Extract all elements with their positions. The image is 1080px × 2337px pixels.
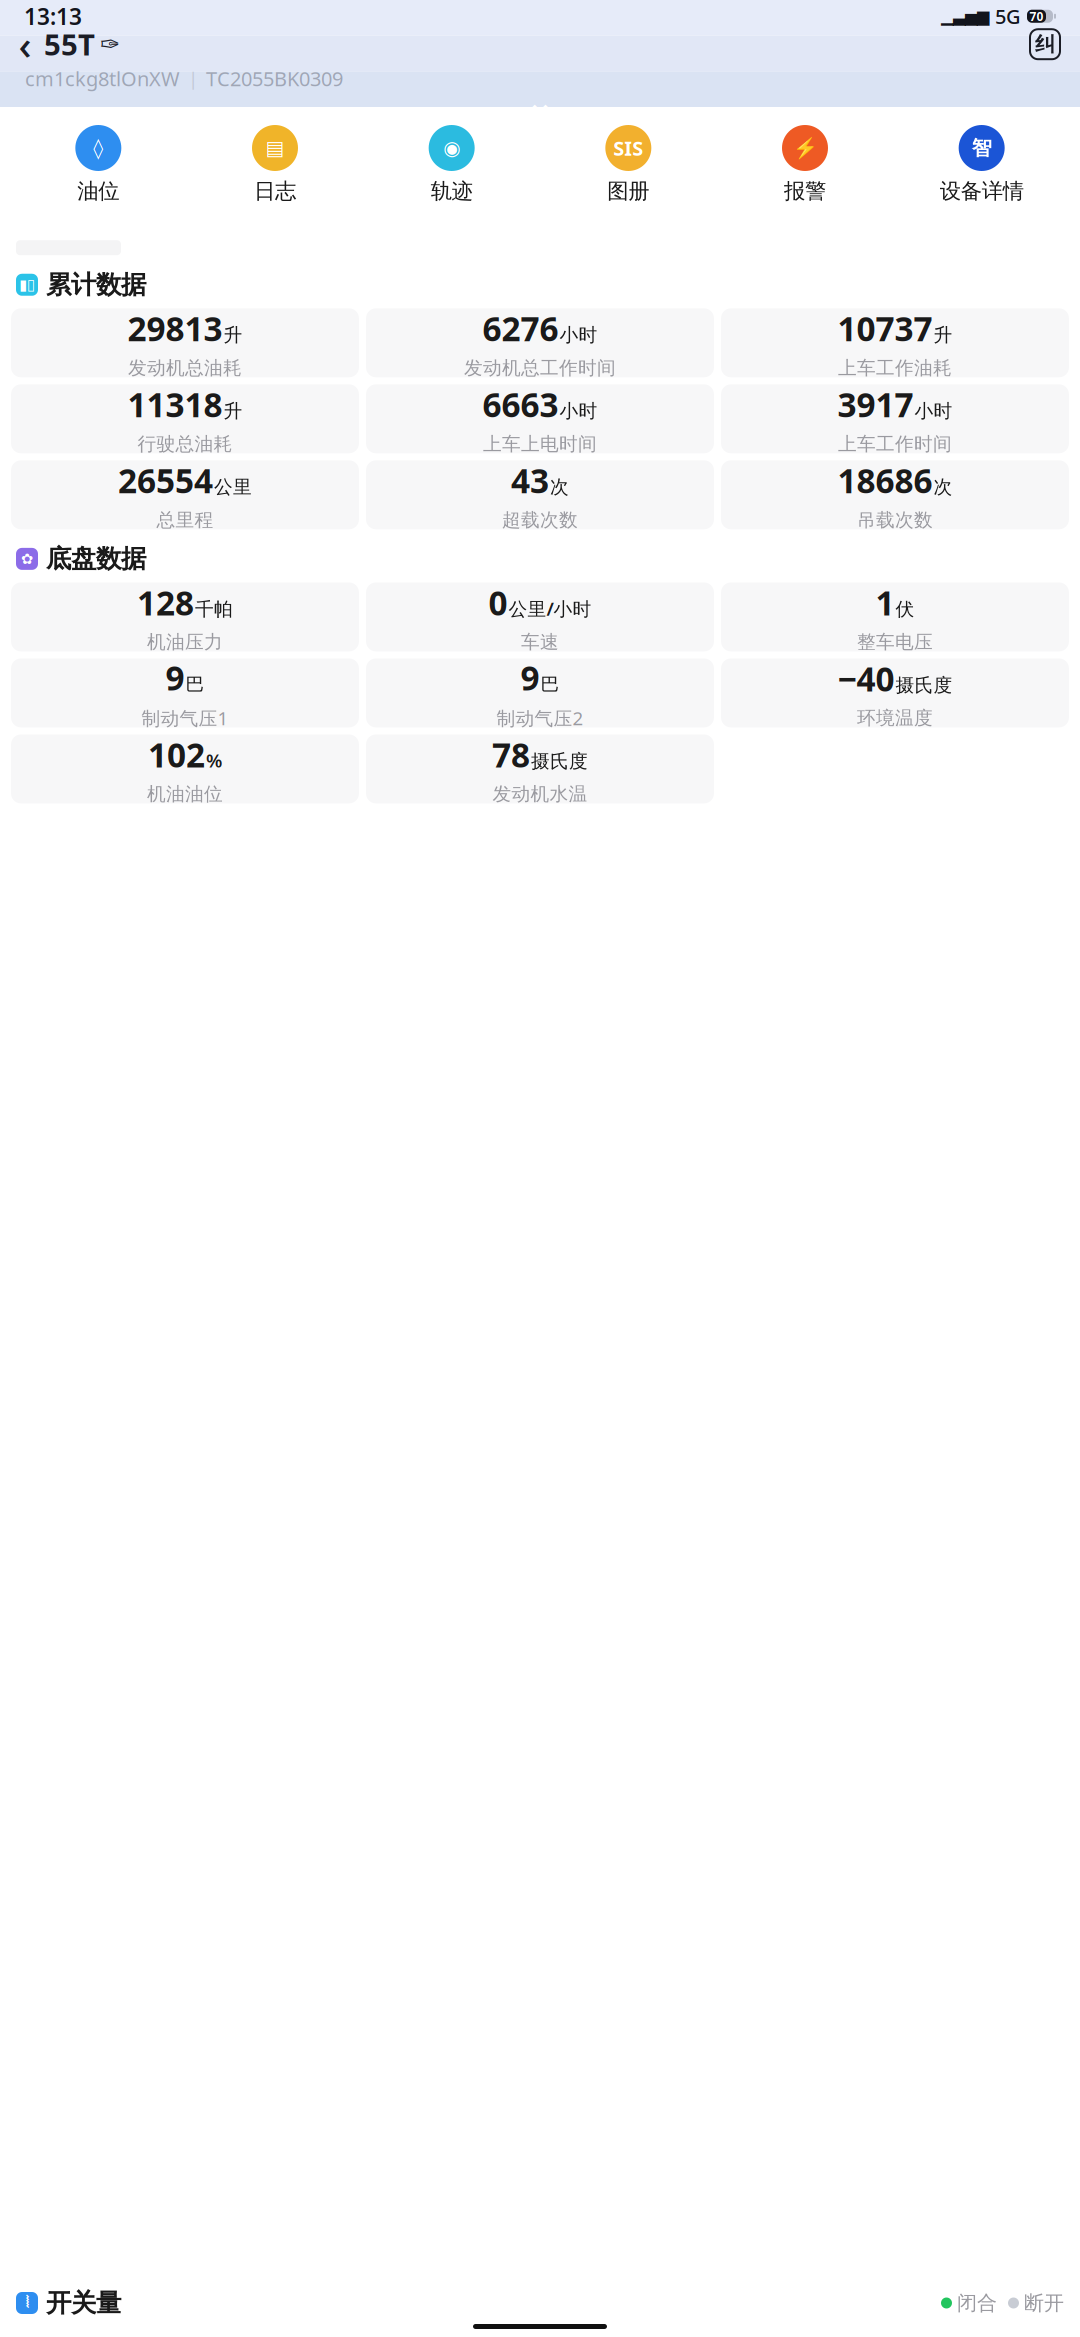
staticText: ⦚ bbox=[25, 2295, 28, 2311]
staticText: 发动机总油耗 bbox=[128, 356, 242, 379]
staticText: 机油压力 bbox=[147, 631, 223, 653]
button[interactable]: SIS bbox=[540, 125, 717, 204]
button[interactable]: 1 bbox=[721, 582, 1069, 651]
button[interactable]: 43 bbox=[366, 460, 714, 529]
staticText: 3917 bbox=[837, 382, 913, 426]
staticText: 升 bbox=[223, 324, 242, 346]
staticText: 55T bbox=[44, 25, 95, 64]
staticText: ◉ bbox=[443, 137, 460, 159]
staticText: 43 bbox=[511, 458, 549, 502]
staticText: 制动气压1 bbox=[141, 706, 228, 730]
staticText: 开关量 bbox=[46, 2287, 121, 2318]
staticText: 超载次数 bbox=[502, 508, 578, 531]
staticText: ▮▯ bbox=[19, 276, 35, 293]
staticText: 报警 bbox=[784, 178, 826, 204]
button[interactable]: ◊ bbox=[10, 125, 187, 204]
staticText: 102 bbox=[148, 732, 205, 777]
staticText: TC2055BK0309 bbox=[206, 65, 343, 92]
staticText: ⌄ bbox=[525, 82, 554, 121]
staticText: 整车电压 bbox=[857, 631, 933, 653]
staticText: cm1ckg8tlOnXW bbox=[25, 65, 180, 92]
staticText: 总里程 bbox=[156, 508, 213, 531]
button[interactable]: 6276 bbox=[366, 308, 714, 377]
staticText: 吊载次数 bbox=[857, 508, 933, 531]
staticText: 5G bbox=[995, 3, 1021, 29]
button[interactable]: 78 bbox=[366, 734, 714, 803]
staticText: 18686 bbox=[837, 458, 932, 502]
staticText: 智 bbox=[972, 136, 992, 160]
button[interactable]: 6663 bbox=[366, 384, 714, 453]
staticText: 小时 bbox=[559, 324, 597, 346]
staticText: 小时 bbox=[914, 400, 952, 422]
button[interactable]: 128 bbox=[11, 582, 359, 651]
staticText: 闭合 bbox=[957, 2291, 997, 2315]
staticText: 设备详情 bbox=[940, 178, 1024, 204]
staticText: % bbox=[206, 748, 222, 773]
button[interactable]: 18686 bbox=[721, 460, 1069, 529]
staticText: 制动气压2 bbox=[496, 706, 583, 730]
button[interactable]: 9 bbox=[366, 658, 714, 727]
staticText: 环境温度 bbox=[857, 707, 933, 729]
staticText: 次 bbox=[550, 476, 569, 498]
button[interactable]: 26554 bbox=[11, 460, 359, 529]
staticText: 图册 bbox=[607, 178, 649, 204]
staticText: 机油油位 bbox=[147, 783, 223, 805]
button[interactable]: 编辑名称 bbox=[95, 29, 125, 59]
staticText: 0 bbox=[488, 580, 507, 625]
button[interactable]: 11318 bbox=[11, 384, 359, 453]
staticText: 纠 bbox=[1035, 32, 1055, 56]
staticText: 9 bbox=[165, 655, 184, 700]
staticText: 摄氏度 bbox=[531, 750, 588, 773]
button[interactable]: ▤ bbox=[187, 125, 363, 204]
staticText: ⚡ bbox=[792, 137, 817, 159]
button[interactable]: 收起 bbox=[510, 92, 570, 112]
staticText: ◊ bbox=[93, 137, 103, 159]
staticText: 13:13 bbox=[24, 1, 82, 31]
staticText: ▤ bbox=[265, 137, 284, 159]
button[interactable]: 智 bbox=[893, 125, 1070, 204]
staticText: 油位 bbox=[77, 178, 119, 204]
staticText: 千帕 bbox=[195, 598, 233, 621]
button[interactable]: 纠偏 bbox=[1030, 29, 1060, 59]
staticText: 日志 bbox=[254, 178, 296, 204]
staticText: | bbox=[188, 66, 198, 91]
staticText: 行驶总油耗 bbox=[137, 432, 232, 455]
button[interactable]: ⚡ bbox=[717, 125, 893, 204]
button[interactable]: 9 bbox=[11, 658, 359, 727]
staticText: 伏 bbox=[895, 598, 914, 621]
staticText: 29813 bbox=[127, 306, 222, 350]
staticText: 车速 bbox=[521, 631, 559, 653]
button[interactable]: 29813 bbox=[11, 308, 359, 377]
staticText: 上车上电时间 bbox=[483, 432, 597, 455]
staticText: 6663 bbox=[482, 382, 558, 426]
button[interactable]: 返回 bbox=[8, 27, 42, 61]
staticText: 78 bbox=[492, 732, 530, 777]
staticText: 底盘数据 bbox=[46, 543, 146, 574]
staticText: 公里/小时 bbox=[508, 596, 591, 621]
button[interactable]: 102 bbox=[11, 734, 359, 803]
staticText: ✿ bbox=[21, 551, 33, 567]
staticText: 公里 bbox=[214, 476, 252, 498]
button[interactable]: 3917 bbox=[721, 384, 1069, 453]
staticText: 上车工作油耗 bbox=[838, 356, 952, 379]
staticText: 70 bbox=[1029, 8, 1043, 24]
button[interactable]: 10737 bbox=[721, 308, 1069, 377]
staticText: 发动机总工作时间 bbox=[464, 356, 616, 379]
button[interactable]: −40 bbox=[721, 658, 1069, 727]
staticText: −40 bbox=[837, 656, 894, 701]
button[interactable]: 0 bbox=[366, 582, 714, 651]
staticText: 断开 bbox=[1024, 2291, 1064, 2315]
staticText: 128 bbox=[137, 580, 194, 625]
staticText: 发动机水温 bbox=[492, 783, 587, 805]
staticText: 11318 bbox=[127, 382, 222, 426]
staticText: 6276 bbox=[482, 306, 558, 350]
button[interactable]: ◉ bbox=[363, 125, 540, 204]
staticText: 小时 bbox=[559, 400, 597, 422]
staticText: ▁▃▅▆ bbox=[941, 7, 989, 25]
staticText: 1 bbox=[875, 580, 894, 625]
staticText: 巴 bbox=[185, 673, 204, 696]
staticText: 巴 bbox=[540, 673, 559, 696]
staticText: 升 bbox=[223, 400, 242, 422]
staticText: SIS bbox=[613, 135, 643, 161]
staticText: ✑ bbox=[100, 31, 120, 58]
